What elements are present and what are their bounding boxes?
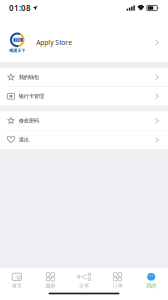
staticText: 银行卡管理 — [19, 93, 44, 100]
button[interactable]: 订单 — [101, 268, 134, 291]
button[interactable]: 服务 — [34, 268, 67, 291]
button[interactable]: 修改密码 — [0, 111, 168, 130]
staticText: 修改密码 — [19, 117, 39, 124]
button[interactable]: 退出 — [0, 130, 168, 149]
staticText: 我的钱包 — [19, 74, 39, 81]
staticText: TFX — [15, 37, 22, 42]
staticText: 首页 — [12, 282, 22, 289]
staticText: 我的 — [146, 282, 156, 289]
staticText: 分享 — [79, 282, 89, 289]
staticText: 服务 — [45, 282, 55, 289]
staticText: 喂团天下 — [9, 48, 25, 53]
staticText: 01:08 — [9, 3, 31, 13]
staticText: Apply Store — [36, 38, 72, 47]
staticText: 订单 — [113, 282, 123, 289]
staticText: 退出 — [19, 136, 29, 143]
button[interactable]: TFX — [0, 23, 168, 62]
button[interactable]: 分享 — [67, 268, 101, 291]
button[interactable]: 我的钱包 — [0, 68, 168, 87]
button[interactable]: 银行卡管理 — [0, 87, 168, 105]
button[interactable]: 首页 — [0, 268, 34, 291]
button[interactable]: 我的 — [134, 268, 168, 291]
